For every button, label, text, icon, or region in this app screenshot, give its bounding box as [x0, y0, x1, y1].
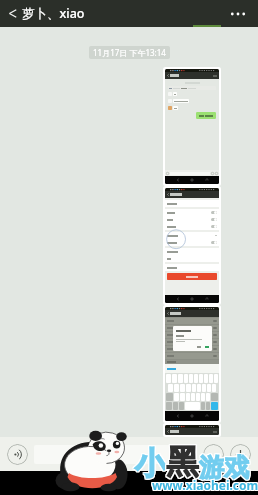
staticText: 黑: [166, 441, 199, 483]
button[interactable]: More options: [227, 6, 249, 22]
staticText: 游: [200, 452, 225, 483]
staticText: 黑: [166, 442, 199, 484]
staticText: 游: [199, 453, 224, 484]
staticText: 黑: [165, 441, 198, 483]
staticText: 戏: [224, 451, 249, 482]
staticText: 小: [134, 445, 165, 484]
staticText: 游: [198, 453, 223, 484]
staticText: 戏: [225, 453, 250, 484]
staticText: 小: [136, 444, 167, 483]
button[interactable]: Back: [3, 5, 20, 22]
staticText: 小: [135, 444, 166, 483]
button[interactable]: Screenshot image: [165, 307, 219, 421]
staticText: 小: [136, 445, 167, 484]
button[interactable]: Add attachment: [230, 444, 251, 465]
staticText: 游: [199, 451, 224, 482]
staticText: www.xiaohei.com: [152, 478, 258, 494]
staticText: www.xiaohei.com: [151, 477, 258, 493]
staticText: 戏: [223, 453, 248, 484]
staticText: 戏: [223, 451, 248, 482]
staticText: 游: [200, 453, 225, 484]
staticText: 小: [136, 443, 167, 482]
staticText: 戏: [225, 451, 250, 482]
button[interactable]: Emoji: [203, 444, 224, 465]
staticText: 黑: [165, 442, 198, 484]
staticText: 萝卜、xiao: [22, 5, 85, 22]
staticText: 黑: [167, 442, 200, 484]
staticText: 黑: [165, 440, 198, 482]
button[interactable]: Screenshot image: [165, 188, 219, 303]
staticText: 小: [135, 445, 166, 484]
staticText: 小: [134, 443, 165, 482]
staticText: 戏: [224, 452, 249, 483]
staticText: 小: [134, 444, 165, 483]
staticText: 游: [198, 452, 223, 483]
button[interactable]: Screenshot image: [165, 69, 219, 184]
staticText: www.xiaohei.com: [153, 478, 258, 494]
button[interactable]: Voice message: [7, 444, 28, 465]
staticText: 黑: [167, 440, 200, 482]
staticText: 小: [135, 443, 166, 482]
staticText: www.xiaohei.com: [153, 477, 258, 493]
staticText: 11月17日 下午13:14: [93, 47, 166, 58]
staticText: 游: [200, 451, 225, 482]
staticText: 黑: [166, 440, 199, 482]
button[interactable]: Screenshot image: [165, 425, 219, 435]
staticText: www.xiaohei.com: [151, 478, 258, 494]
staticText: 游: [199, 452, 224, 483]
staticText: www.xiaohei.com: [152, 477, 258, 493]
staticText: www.xiaohei.com: [153, 476, 258, 492]
button[interactable]: [34, 445, 197, 464]
staticText: www.xiaohei.com: [151, 476, 258, 492]
staticText: 戏: [223, 452, 248, 483]
staticText: 游: [198, 451, 223, 482]
staticText: 黑: [167, 441, 200, 483]
staticText: 戏: [225, 452, 250, 483]
staticText: 戏: [224, 453, 249, 484]
staticText: www.xiaohei.com: [152, 476, 258, 492]
